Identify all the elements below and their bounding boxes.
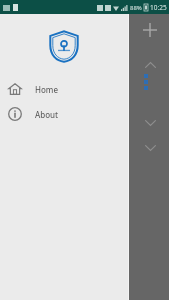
button[interactable]: Home	[0, 78, 128, 100]
staticText: 10:25	[150, 3, 167, 12]
staticText: Home	[35, 84, 59, 95]
staticText: About	[35, 109, 59, 120]
button[interactable]: Add	[136, 16, 164, 44]
staticText: 88%	[130, 4, 142, 12]
button[interactable]: Collapse	[139, 54, 161, 76]
button[interactable]: Expand	[139, 112, 161, 134]
button[interactable]: More options	[140, 72, 152, 92]
button[interactable]: Expand more	[139, 137, 161, 159]
button[interactable]: About	[0, 103, 128, 125]
